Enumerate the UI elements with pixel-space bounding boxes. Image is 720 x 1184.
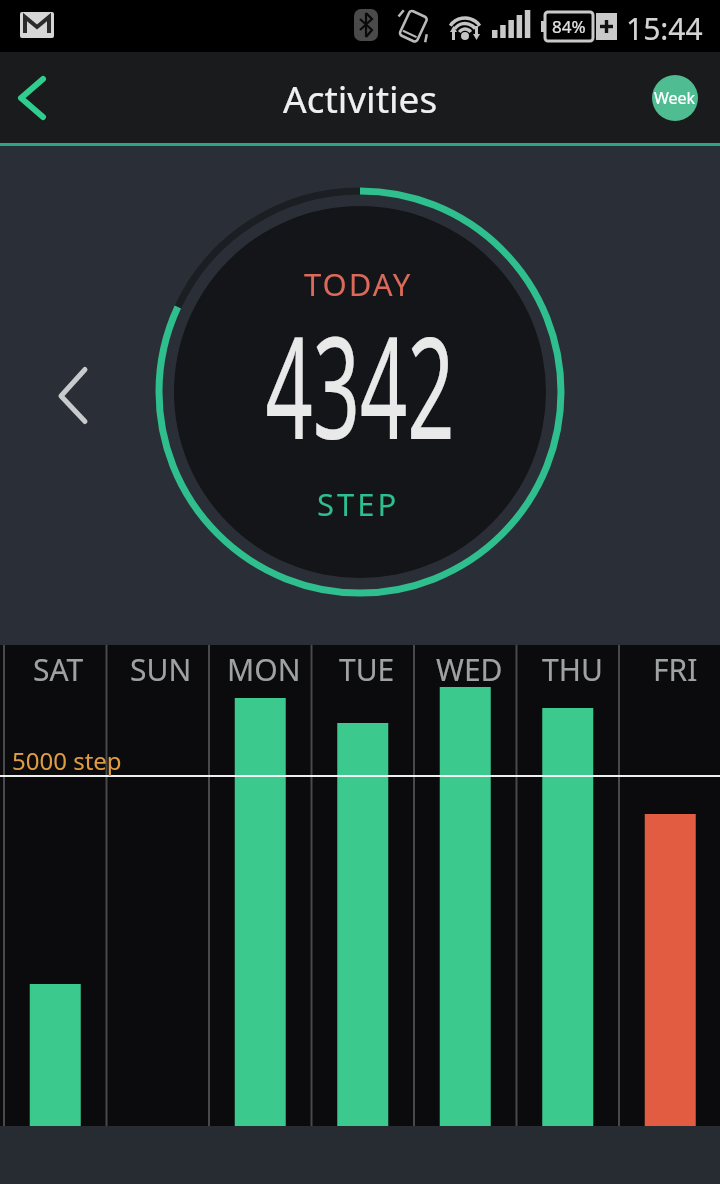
button[interactable]: FRI <box>624 649 720 685</box>
staticText: Week <box>654 87 696 109</box>
button[interactable]: SAT <box>7 649 109 685</box>
button[interactable]: TUE <box>315 649 418 685</box>
staticText: 4342 <box>266 289 455 465</box>
button[interactable]: WED <box>418 649 521 685</box>
button[interactable] <box>33 354 113 436</box>
button[interactable] <box>0 58 64 138</box>
staticText: 5000 step <box>12 744 122 777</box>
button[interactable]: THU <box>521 649 624 685</box>
staticText: 84% <box>552 15 586 38</box>
button[interactable]: SUN <box>109 649 212 685</box>
staticText: MON <box>227 649 301 685</box>
staticText: WED <box>436 649 503 685</box>
staticText: 15:44 <box>626 8 703 49</box>
staticText: THU <box>542 649 603 685</box>
button[interactable]: MON <box>212 649 315 685</box>
staticText: TODAY <box>304 263 413 305</box>
staticText: SAT <box>33 649 84 685</box>
staticText: STEP <box>317 483 400 525</box>
staticText: Activities <box>283 73 438 123</box>
button[interactable]: Week <box>652 75 698 121</box>
staticText: FRI <box>653 649 698 685</box>
staticText: TUE <box>339 649 395 685</box>
staticText: SUN <box>130 649 192 685</box>
